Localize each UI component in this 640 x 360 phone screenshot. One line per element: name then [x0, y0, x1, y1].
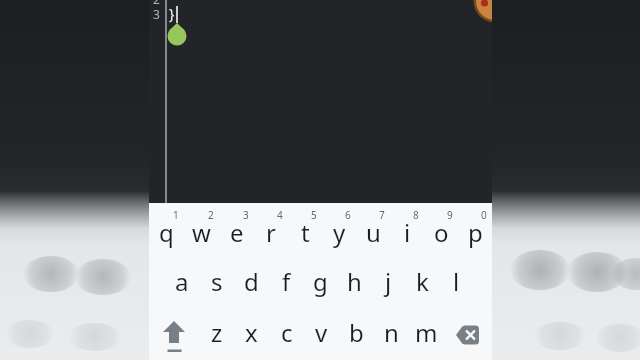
- staticText: p: [468, 216, 483, 249]
- button[interactable]: 2: [184, 203, 219, 256]
- button[interactable]: [472, 0, 492, 23]
- staticText: x: [245, 316, 258, 349]
- button[interactable]: k: [405, 256, 439, 307]
- staticText: r: [266, 216, 276, 249]
- button[interactable]: f: [269, 256, 303, 307]
- staticText: 2: [208, 208, 214, 222]
- button[interactable]: b: [339, 307, 374, 358]
- staticText: 6: [345, 208, 351, 222]
- button[interactable]: s: [199, 256, 234, 307]
- staticText: h: [347, 265, 362, 298]
- button[interactable]: l: [439, 256, 473, 307]
- staticText: 3: [153, 6, 160, 22]
- staticText: y: [333, 216, 346, 249]
- staticText: g: [313, 265, 328, 298]
- staticText: w: [192, 216, 211, 249]
- staticText: s: [211, 265, 223, 298]
- staticText: e: [230, 216, 244, 249]
- button[interactable]: 0: [458, 203, 492, 256]
- staticText: 2: [153, 0, 160, 7]
- button[interactable]: 6: [322, 203, 356, 256]
- button[interactable]: 5: [288, 203, 322, 256]
- staticText: v: [315, 316, 328, 349]
- staticText: k: [416, 265, 429, 298]
- staticText: l: [453, 265, 460, 298]
- button[interactable]: z: [199, 307, 234, 358]
- staticText: o: [434, 216, 449, 249]
- button[interactable]: d: [234, 256, 269, 307]
- button[interactable]: x: [234, 307, 269, 358]
- staticText: i: [404, 216, 411, 249]
- staticText: b: [349, 316, 364, 349]
- staticText: 9: [447, 208, 453, 222]
- staticText: u: [366, 216, 381, 249]
- button[interactable]: [444, 307, 492, 358]
- staticText: a: [175, 265, 189, 298]
- staticText: 8: [413, 208, 419, 222]
- button[interactable]: a: [164, 256, 199, 307]
- button[interactable]: 3: [219, 203, 254, 256]
- staticText: 7: [379, 208, 385, 222]
- button[interactable]: m: [409, 307, 444, 358]
- staticText: 4: [277, 208, 283, 222]
- button[interactable]: [149, 307, 199, 358]
- staticText: 0: [481, 208, 487, 222]
- staticText: t: [301, 216, 310, 249]
- staticText: q: [159, 216, 174, 249]
- staticText: m: [415, 316, 438, 349]
- button[interactable]: c: [269, 307, 304, 358]
- button[interactable]: v: [304, 307, 339, 358]
- button[interactable]: 9: [424, 203, 458, 256]
- staticText: 5: [311, 208, 317, 222]
- staticText: 3: [243, 208, 249, 222]
- staticText: j: [385, 265, 392, 298]
- button[interactable]: 7: [356, 203, 390, 256]
- button[interactable]: [167, 23, 187, 46]
- staticText: 1: [173, 208, 179, 222]
- button[interactable]: 4: [254, 203, 288, 256]
- staticText: n: [384, 316, 399, 349]
- staticText: f: [282, 265, 291, 298]
- button[interactable]: g: [303, 256, 337, 307]
- staticText: d: [244, 265, 259, 298]
- button[interactable]: 8: [390, 203, 424, 256]
- staticText: }: [169, 4, 175, 23]
- button[interactable]: h: [337, 256, 371, 307]
- button[interactable]: j: [371, 256, 405, 307]
- staticText: c: [281, 316, 293, 349]
- button[interactable]: n: [374, 307, 409, 358]
- button[interactable]: 1: [149, 203, 184, 256]
- staticText: z: [211, 316, 223, 349]
